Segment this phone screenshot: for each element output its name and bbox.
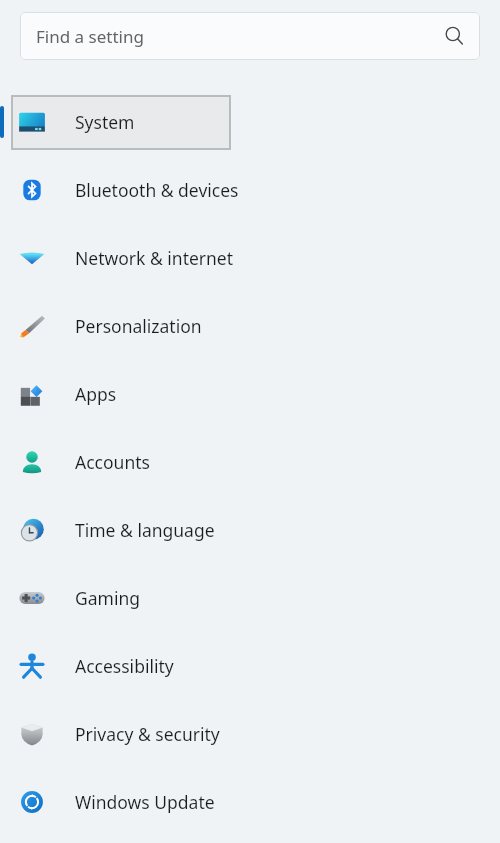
staticText: Gaming [75,586,141,610]
button[interactable]: Gaming [0,564,500,632]
button[interactable]: Accessibility [0,632,500,700]
staticText: Accessibility [75,654,174,678]
staticText: Personalization [75,314,202,338]
button[interactable]: Personalization [0,292,500,360]
staticText: Apps [75,382,117,406]
button[interactable]: Apps [0,360,500,428]
staticText: Bluetooth & devices [75,178,239,202]
button[interactable]: Network & internet [0,224,500,292]
button[interactable]: Bluetooth & devices [0,156,500,224]
staticText: Network & internet [75,246,234,270]
other: Search [444,26,464,46]
staticText: Privacy & security [75,722,220,746]
button[interactable]: System [0,88,500,156]
staticText: Find a setting [36,25,144,48]
staticText: Windows Update [75,790,215,814]
button[interactable]: Find a setting [20,12,480,60]
button[interactable]: Privacy & security [0,700,500,768]
button[interactable]: Accounts [0,428,500,496]
staticText: System [75,110,135,134]
button[interactable]: Time & language [0,496,500,564]
button[interactable]: Windows Update [0,768,500,836]
staticText: Accounts [75,450,150,474]
staticText: Time & language [75,518,215,542]
